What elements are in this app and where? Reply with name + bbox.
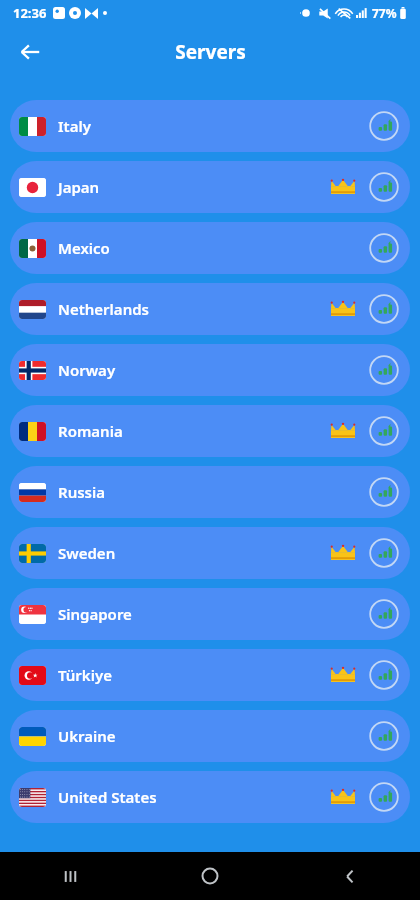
button[interactable]: Italy [10,100,410,152]
button[interactable]: Romania [10,405,410,457]
staticText: Netherlands [58,299,149,319]
button[interactable]: Mexico [10,222,410,274]
staticText: Servers [175,39,246,65]
staticText: Sweden [58,543,116,563]
staticText: Russia [58,482,106,502]
button[interactable]: Türkiye [10,649,410,701]
staticText: Singapore [58,604,132,624]
staticText: Japan [58,177,100,197]
button[interactable]: Back [280,852,420,900]
button[interactable]: Netherlands [10,283,410,335]
button[interactable]: Back [8,30,52,74]
button[interactable]: Recents [0,852,140,900]
staticText: United States [58,787,157,807]
button[interactable]: Home [140,852,280,900]
staticText: 77% [372,5,397,21]
staticText: Ukraine [58,726,116,746]
staticText: Mexico [58,238,110,258]
button[interactable]: Sweden [10,527,410,579]
staticText: 12:36 [13,4,47,22]
button[interactable]: Japan [10,161,410,213]
button[interactable]: Norway [10,344,410,396]
staticText: Türkiye [58,665,112,685]
staticText: Norway [58,360,116,380]
button[interactable]: Russia [10,466,410,518]
staticText: Romania [58,421,123,441]
button[interactable]: Singapore [10,588,410,640]
button[interactable]: Ukraine [10,710,410,762]
button[interactable]: United States [10,771,410,823]
staticText: Italy [58,116,91,136]
